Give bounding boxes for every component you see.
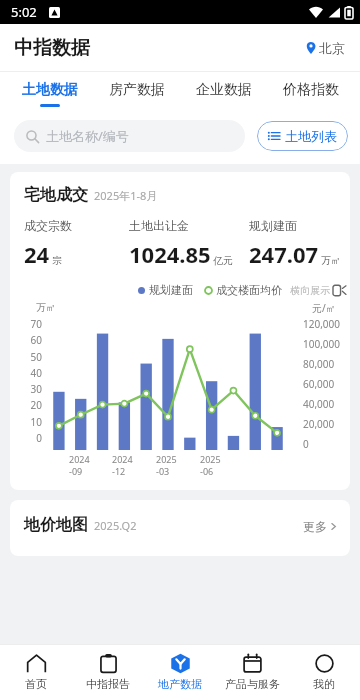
button[interactable]: 产品与服务 [216, 644, 288, 700]
button[interactable]: 地产数据 [144, 644, 216, 700]
staticText: 产品与服务 [225, 677, 280, 691]
staticText: 地价地图 [24, 515, 88, 535]
staticText: 70 [24, 317, 42, 331]
staticText: 我的 [313, 677, 335, 691]
staticText: 20,000 [303, 417, 335, 431]
staticText: 0 [303, 437, 309, 451]
staticText: 中指报告 [86, 677, 130, 691]
button[interactable]: 土地列表 [257, 121, 348, 151]
staticText: 更多 [303, 519, 327, 534]
staticText: 元/㎡ [312, 301, 336, 315]
staticText: 2025-03 [156, 453, 178, 477]
staticText: 5:02 [11, 3, 37, 21]
staticText: 横向展示 [290, 284, 330, 297]
staticText: 规划建面 [149, 283, 193, 297]
staticText: 10 [24, 415, 42, 429]
button[interactable]: 中指报告 [72, 644, 144, 700]
staticText: 2025-06 [200, 453, 222, 477]
staticText: 40 [24, 366, 42, 380]
staticText: 成交宗数 [24, 218, 72, 233]
staticText: 土地出让金 [129, 218, 189, 233]
staticText: 土地名称/编号 [46, 127, 129, 145]
button[interactable]: 首页 [0, 644, 72, 700]
staticText: 万㎡ [321, 254, 341, 267]
staticText: 2024-12 [112, 453, 134, 477]
button[interactable]: 土地名称/编号 [14, 120, 245, 152]
staticText: 规划建面 [249, 218, 297, 233]
staticText: 40,000 [303, 397, 335, 411]
staticText: 60,000 [303, 377, 335, 391]
button[interactable]: 土地数据 [6, 72, 93, 116]
staticText: 地产数据 [158, 677, 202, 691]
staticText: 价格指数 [283, 81, 339, 99]
staticText: 247.07 [249, 239, 319, 269]
staticText: 成交楼面均价 [216, 283, 282, 297]
staticText: 宅地成交 [24, 185, 88, 205]
button[interactable]: 更多 [303, 519, 338, 535]
staticText: 北京 [319, 40, 345, 56]
staticText: 120,000 [303, 317, 340, 331]
staticText: 30 [24, 382, 42, 396]
staticText: 24 [24, 239, 50, 269]
button[interactable]: 企业数据 [180, 72, 267, 116]
staticText: 2025.Q2 [94, 518, 137, 533]
staticText: 房产数据 [109, 81, 165, 99]
button[interactable]: 我的 [288, 644, 360, 700]
staticText: 2025年1-8月 [94, 188, 158, 203]
staticText: 土地列表 [285, 128, 337, 144]
staticText: 100,000 [303, 337, 340, 351]
staticText: 亿元 [213, 254, 233, 267]
staticText: 2024-09 [69, 453, 90, 477]
button[interactable]: 价格指数 [267, 72, 354, 116]
button[interactable]: 横向展示 [290, 284, 346, 297]
staticText: 20 [24, 398, 42, 412]
staticText: 万㎡ [36, 301, 56, 314]
staticText: 1024.85 [129, 239, 211, 269]
staticText: 80,000 [303, 357, 335, 371]
staticText: 60 [24, 333, 42, 347]
staticText: 50 [24, 350, 42, 364]
staticText: 宗 [52, 254, 62, 267]
staticText: 企业数据 [196, 81, 252, 99]
staticText: 土地数据 [22, 81, 78, 99]
staticText: 0 [24, 431, 42, 445]
button[interactable]: 房产数据 [93, 72, 180, 116]
staticText: 中指数据 [14, 36, 90, 60]
staticText: 首页 [25, 677, 47, 691]
button[interactable]: 北京 [302, 36, 349, 60]
